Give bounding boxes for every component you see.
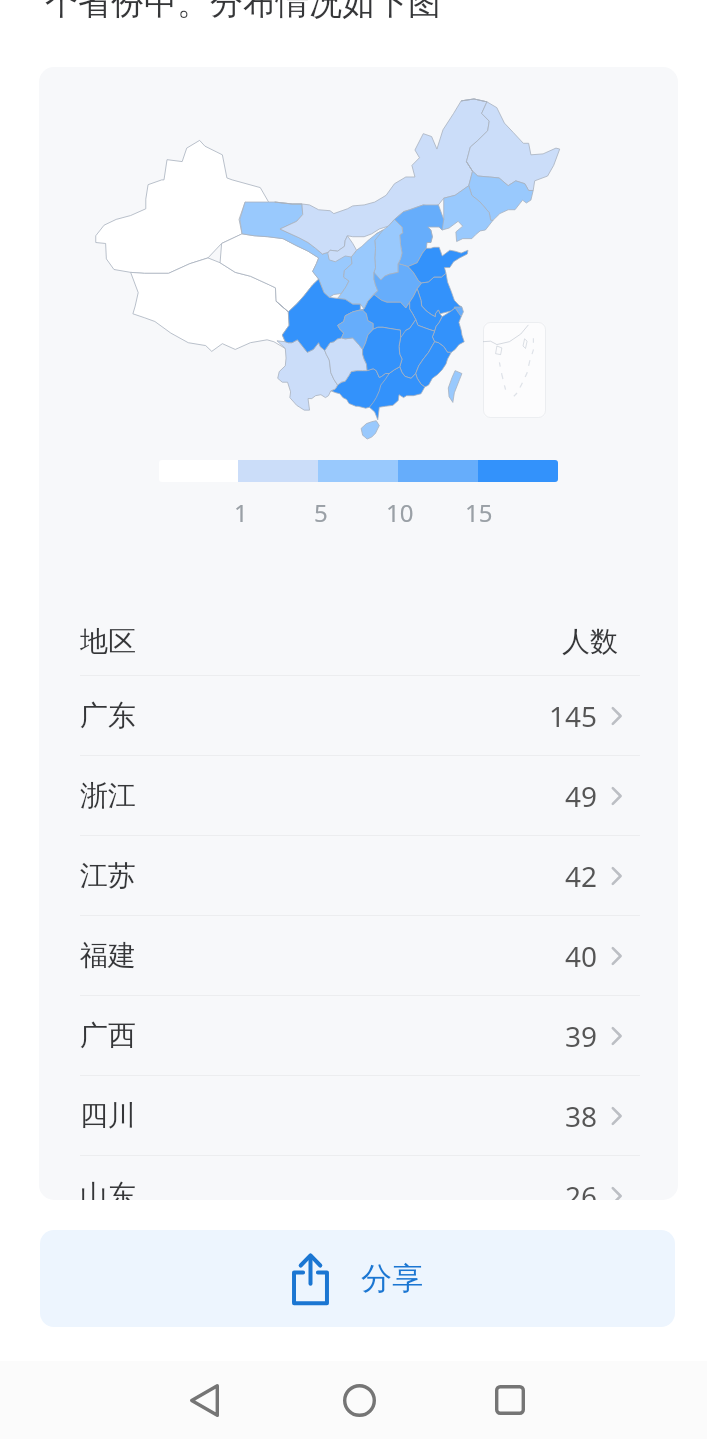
staticText: 1 bbox=[234, 496, 248, 528]
staticText: 42 bbox=[565, 857, 598, 895]
staticText: 江苏 bbox=[80, 858, 136, 893]
staticText: 山东 bbox=[80, 1178, 136, 1200]
button[interactable]: 广东 bbox=[80, 676, 640, 755]
staticText: 15 bbox=[465, 496, 493, 528]
staticText: 福建 bbox=[80, 938, 136, 973]
button[interactable]: 广西 bbox=[80, 996, 640, 1075]
button[interactable]: 江苏 bbox=[80, 836, 640, 915]
staticText: 分享 bbox=[361, 1259, 423, 1298]
staticText: 10 bbox=[386, 496, 414, 528]
staticText: 26 bbox=[565, 1177, 598, 1200]
staticText: 地区 bbox=[80, 624, 136, 659]
staticText: 个省份中。分布情况如下图 bbox=[45, 0, 441, 24]
button[interactable]: 福建 bbox=[80, 916, 640, 995]
button[interactable]: 分享 bbox=[40, 1230, 675, 1327]
staticText: 38 bbox=[565, 1097, 598, 1135]
staticText: 40 bbox=[565, 937, 598, 975]
button[interactable]: 四川 bbox=[80, 1076, 640, 1155]
staticText: 49 bbox=[565, 777, 598, 815]
button[interactable]: Home bbox=[311, 1361, 407, 1439]
staticText: 浙江 bbox=[80, 778, 136, 813]
staticText: 广东 bbox=[80, 698, 136, 733]
button[interactable]: 浙江 bbox=[80, 756, 640, 835]
staticText: 39 bbox=[565, 1017, 598, 1055]
button[interactable]: 山东 bbox=[80, 1156, 640, 1200]
staticText: 人数 bbox=[562, 624, 618, 659]
staticText: 145 bbox=[549, 697, 598, 735]
staticText: 四川 bbox=[80, 1098, 136, 1133]
button[interactable]: Back bbox=[156, 1361, 252, 1439]
button[interactable]: Recent apps bbox=[462, 1361, 558, 1439]
staticText: 广西 bbox=[80, 1018, 136, 1053]
staticText: 5 bbox=[314, 496, 328, 528]
